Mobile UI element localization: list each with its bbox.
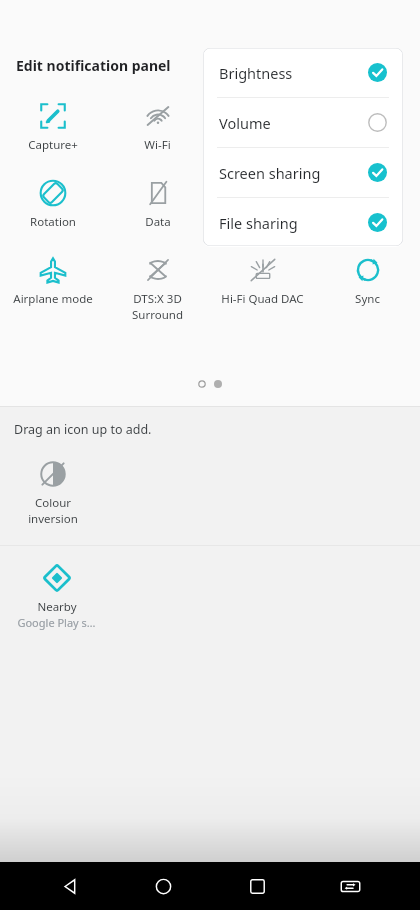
- staticText: File sharing: [219, 213, 298, 233]
- staticText: DTS:X 3D Surround: [132, 291, 183, 323]
- button[interactable]: Sync: [315, 254, 420, 309]
- staticText: Airplane mode: [13, 291, 93, 307]
- button[interactable]: Hi-Fi Quad DAC: [210, 254, 315, 309]
- button[interactable]: DTS:X 3D Surround: [105, 254, 210, 325]
- button[interactable]: Screen sharing: [203, 148, 403, 197]
- staticText: Hi-Fi Quad DAC: [221, 291, 304, 307]
- staticText: Volume: [219, 113, 271, 133]
- staticText: Colour inversion: [28, 495, 78, 527]
- staticText: Rotation: [30, 214, 76, 230]
- staticText: Edit notification panel: [16, 56, 171, 75]
- button[interactable]: Colour inversion: [0, 460, 105, 527]
- staticText: Flashlight: [341, 137, 394, 153]
- button[interactable]: Flashlight: [315, 177, 420, 232]
- button[interactable]: Recents: [233, 862, 281, 910]
- button[interactable]: Back: [46, 862, 94, 910]
- staticText: Nearby: [37, 599, 77, 615]
- button[interactable]: Split screen: [326, 862, 374, 910]
- button[interactable]: Flashlight: [315, 100, 420, 155]
- button[interactable]: Home: [139, 862, 187, 910]
- button[interactable]: Brightness: [203, 48, 403, 97]
- staticText: Capture+: [28, 137, 78, 153]
- staticText: Flashlight: [341, 214, 394, 230]
- staticText: NFC: [252, 137, 274, 153]
- staticText: Google Play s…: [17, 615, 96, 630]
- staticText: Data: [145, 214, 171, 230]
- staticText: NFC: [252, 214, 274, 230]
- staticText: Drag an icon up to add.: [14, 421, 152, 438]
- button[interactable]: Data: [105, 177, 210, 232]
- button[interactable]: Rotation: [0, 177, 105, 232]
- button[interactable]: Airplane mode: [0, 254, 105, 309]
- button[interactable]: File sharing: [203, 198, 403, 247]
- button[interactable]: Nearby: [0, 564, 113, 630]
- staticText: Wi-Fi: [144, 137, 171, 153]
- button[interactable]: Capture+: [0, 100, 105, 155]
- button[interactable]: NFC: [210, 100, 315, 155]
- button[interactable]: Volume: [203, 98, 403, 147]
- staticText: Sync: [355, 291, 380, 307]
- button[interactable]: Wi-Fi: [105, 100, 210, 155]
- staticText: Brightness: [219, 63, 293, 83]
- staticText: Screen sharing: [219, 163, 321, 183]
- button[interactable]: NFC: [210, 177, 315, 232]
